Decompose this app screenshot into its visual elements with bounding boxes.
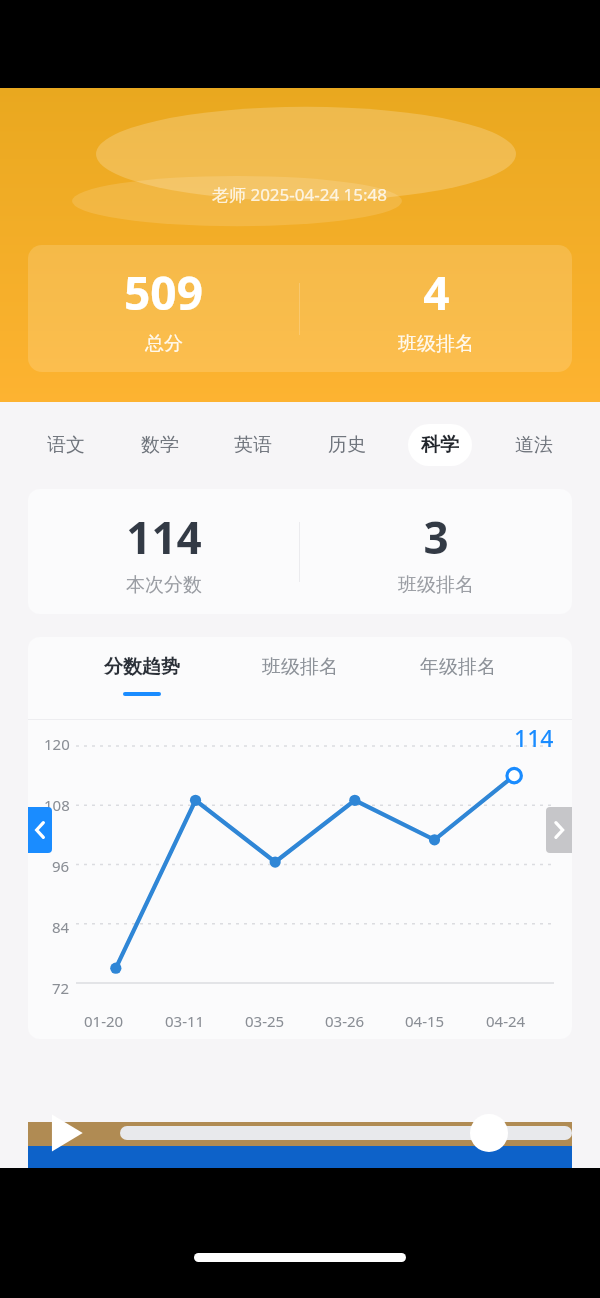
button[interactable]: Seek: [470, 1114, 508, 1152]
button[interactable]: Next: [546, 807, 572, 853]
staticText: 96: [52, 856, 70, 876]
staticText: 108: [44, 795, 70, 815]
staticText: 03-11: [165, 1011, 205, 1031]
staticText: 总分: [145, 332, 183, 356]
staticText: 班级排名: [398, 573, 474, 597]
staticText: 分数趋势: [104, 655, 180, 679]
staticText: 120: [44, 734, 70, 754]
button[interactable]: 语文: [34, 424, 98, 466]
staticText: 03-25: [245, 1011, 285, 1031]
staticText: 01-20: [84, 1011, 124, 1031]
staticText: 04-15: [405, 1011, 445, 1031]
staticText: 年级排名: [420, 655, 496, 679]
staticText: 114: [514, 722, 554, 753]
button[interactable]: 年级排名: [414, 655, 502, 696]
staticText: 语文: [47, 433, 85, 457]
staticText: 班级排名: [262, 655, 338, 679]
staticText: 509: [124, 261, 203, 324]
button[interactable]: 数学: [128, 424, 192, 466]
button[interactable]: 科学: [408, 424, 472, 466]
staticText: 72: [52, 978, 70, 998]
button[interactable]: 历史: [315, 424, 379, 466]
button[interactable]: 英语: [221, 424, 285, 466]
staticText: 84: [52, 917, 70, 937]
staticText: 道法: [515, 433, 553, 457]
staticText: 3: [423, 507, 449, 567]
button[interactable]: 509: [28, 245, 572, 372]
staticText: 本次分数: [126, 573, 202, 597]
button[interactable]: 班级排名: [256, 655, 344, 696]
staticText: 114: [126, 507, 202, 567]
staticText: 英语: [234, 433, 272, 457]
button[interactable]: 114: [28, 489, 572, 614]
button[interactable]: 分数趋势: [98, 655, 186, 696]
button[interactable]: Play: [44, 1111, 88, 1155]
staticText: 历史: [328, 433, 366, 457]
staticText: 4: [423, 261, 450, 324]
button[interactable]: Previous: [28, 807, 52, 853]
staticText: 班级排名: [398, 332, 474, 356]
staticText: 03-26: [325, 1011, 365, 1031]
staticText: 科学: [421, 433, 459, 457]
staticText: 老师 2025-04-24 15:48: [212, 183, 388, 206]
staticText: 04-24: [486, 1011, 526, 1031]
staticText: 数学: [141, 433, 179, 457]
button[interactable]: 道法: [502, 424, 566, 466]
